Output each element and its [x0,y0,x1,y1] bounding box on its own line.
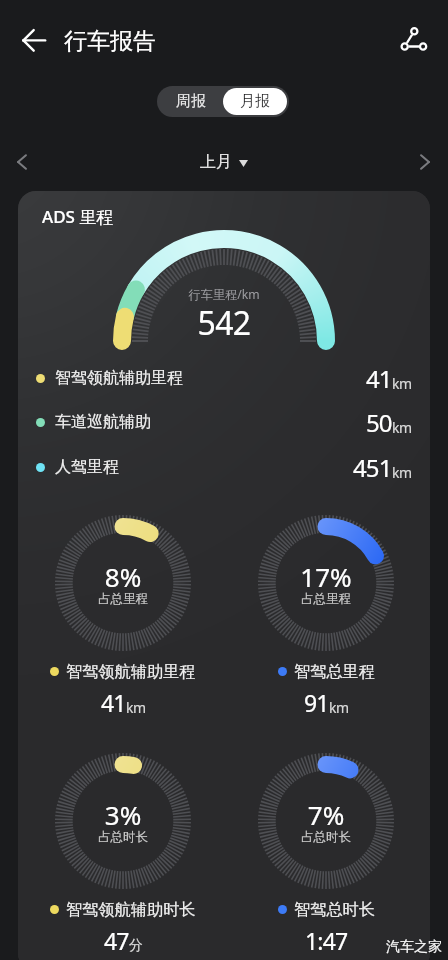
staticText: 451 [353,451,392,484]
staticText: 占总里程 [37,591,209,607]
staticText: 汽车之家 [386,938,442,956]
staticText: 车道巡航辅助 [55,412,151,432]
staticText: 7% [240,797,412,832]
staticText: 1:47 [305,925,348,956]
button[interactable]: 17% [240,497,412,722]
staticText: 智驾领航辅助里程 [55,368,183,388]
staticText: 行车报告 [64,27,156,56]
staticText: km [392,463,412,482]
staticText: km [392,418,412,437]
staticText: 47 [104,925,129,956]
button[interactable]: 3% [37,735,209,960]
staticText: 91 [304,687,329,718]
button[interactable]: Previous month [2,142,42,182]
staticText: 占总时长 [240,829,412,845]
staticText: 41 [101,687,126,718]
button[interactable]: 车道巡航辅助 [18,400,430,444]
staticText: 8% [37,559,209,594]
staticText: 月报 [240,92,270,111]
staticText: 分 [129,937,143,955]
staticText: 17% [240,559,412,594]
staticText: km [126,698,146,717]
button[interactable]: Share [390,17,436,63]
staticText: 542 [164,301,284,345]
staticText: ADS 里程 [42,205,114,228]
staticText: km [329,698,349,717]
staticText: 占总时长 [37,829,209,845]
staticText: 智驾领航辅助时长 [66,899,196,919]
staticText: 人驾里程 [55,457,119,477]
button[interactable]: Back [10,17,56,63]
button[interactable]: 周报 [159,88,223,115]
button[interactable]: 7% [240,735,412,960]
button[interactable]: 上月 [200,152,248,172]
staticText: 3% [37,797,209,832]
button[interactable]: Next month [405,142,445,182]
staticText: 占总里程 [240,591,412,607]
button[interactable]: 人驾里程 [18,445,430,489]
staticText: 智驾总里程 [294,661,375,681]
staticText: 上月 [200,152,232,172]
staticText: 智驾总时长 [294,899,375,919]
staticText: 周报 [176,92,206,111]
staticText: 智驾领航辅助里程 [66,661,196,681]
staticText: 50 [366,406,392,439]
staticText: 41 [366,362,392,395]
staticText: km [392,374,412,393]
staticText: 行车里程/km [164,286,284,303]
button[interactable]: 智驾领航辅助里程 [18,356,430,400]
button[interactable]: 月报 [223,88,287,115]
button[interactable]: 8% [37,497,209,722]
